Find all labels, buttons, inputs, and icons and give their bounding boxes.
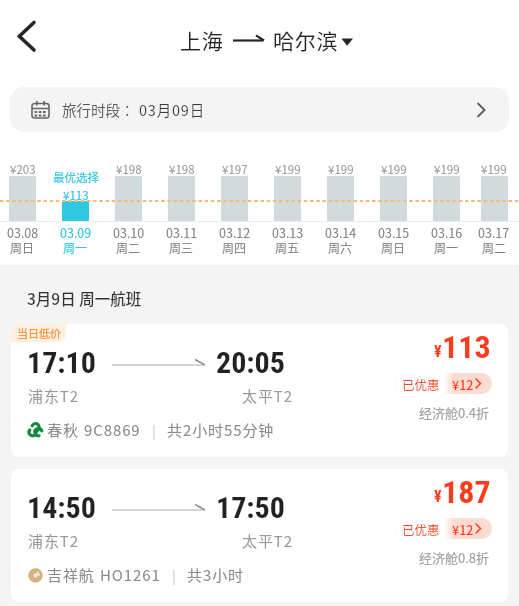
staticText: 周二 [482, 239, 507, 256]
button[interactable]: ¥197 [208, 145, 261, 255]
staticText: 最优选择 [53, 169, 99, 186]
staticText: 20:05 [216, 345, 285, 380]
staticText: 113 [442, 328, 491, 366]
button[interactable]: 已优惠 [395, 518, 492, 539]
button[interactable]: ¥198 [102, 145, 155, 255]
staticText: 周日 [381, 239, 406, 256]
staticText: 17:50 [216, 490, 285, 525]
button[interactable]: ¥199 [473, 145, 515, 255]
staticText: 当日低价 [17, 325, 61, 341]
staticText: ¥199 [328, 161, 354, 178]
staticText: | [172, 565, 176, 585]
staticText: 上海 [180, 25, 224, 55]
staticText: ¥197 [222, 161, 248, 178]
staticText: ¥198 [116, 161, 142, 178]
button[interactable]: 最优选择 [49, 145, 102, 255]
staticText: 03月09日 [139, 99, 205, 120]
button[interactable]: 已优惠 [395, 373, 492, 394]
staticText: 太平T2 [242, 530, 293, 552]
staticText: 哈尔滨 [273, 25, 339, 55]
staticText: 已优惠 [402, 375, 440, 393]
staticText: 187 [442, 473, 491, 511]
staticText: 03.09 [60, 223, 92, 241]
button[interactable]: 旅行时段： [10, 87, 509, 132]
staticText: 03.11 [166, 223, 198, 241]
staticText: 太平T2 [242, 385, 293, 407]
button[interactable]: Back [3, 15, 51, 63]
staticText: 春秋 [47, 419, 79, 441]
staticText: ¥199 [434, 161, 460, 178]
staticText: 共2小时55分钟 [167, 419, 275, 441]
staticText: | [152, 420, 156, 440]
button[interactable]: ¥203 [0, 145, 49, 255]
staticText: ¥ [434, 342, 442, 361]
button[interactable]: ¥199 [420, 145, 473, 255]
staticText: ¥199 [481, 161, 507, 178]
button[interactable]: ¥199 [314, 145, 367, 255]
staticText: ¥12 [452, 375, 474, 393]
staticText: 周一 [434, 239, 459, 256]
staticText: 周五 [275, 239, 300, 256]
staticText: ¥203 [10, 161, 36, 178]
staticText: ¥199 [275, 161, 301, 178]
staticText: 周三 [169, 239, 194, 256]
staticText: ¥198 [169, 161, 195, 178]
staticText: 17:10 [27, 345, 96, 380]
button[interactable]: ¥199 [261, 145, 314, 255]
staticText: 周四 [222, 239, 247, 256]
staticText: 9C8869 [84, 419, 141, 441]
staticText: 03.12 [219, 223, 251, 241]
button[interactable]: 14:50 [11, 469, 508, 602]
staticText: ¥113 [63, 187, 89, 204]
staticText: 03.17 [478, 223, 510, 241]
staticText: 周日 [10, 239, 35, 256]
staticText: 14:50 [27, 490, 96, 525]
staticText: 03.08 [7, 223, 39, 241]
staticText: ¥12 [452, 520, 474, 538]
staticText: 周六 [328, 239, 353, 256]
staticText: 已优惠 [402, 520, 440, 538]
staticText: 3月9日 周一航班 [27, 287, 142, 309]
staticText: 03.10 [113, 223, 145, 241]
button[interactable]: ¥199 [367, 145, 420, 255]
staticText: 03.16 [431, 223, 463, 241]
staticText: HO1261 [100, 564, 161, 586]
staticText: 旅行时段： [62, 99, 135, 120]
button[interactable]: 当日低价 [11, 324, 508, 457]
staticText: 经济舱0.4折 [419, 403, 490, 422]
button[interactable]: ¥198 [155, 145, 208, 255]
staticText: 浦东T2 [28, 385, 79, 407]
staticText: ¥199 [381, 161, 407, 178]
staticText: 周二 [116, 239, 141, 256]
staticText: 共3小时 [187, 564, 244, 586]
staticText: ¥ [434, 487, 442, 506]
staticText: 吉祥航 [47, 564, 95, 586]
staticText: 经济舱0.8折 [419, 548, 490, 567]
staticText: 03.15 [378, 223, 410, 241]
staticText: 浦东T2 [28, 530, 79, 552]
staticText: 03.14 [325, 223, 357, 241]
button[interactable]: Change dates [471, 99, 493, 121]
staticText: 03.13 [272, 223, 304, 241]
staticText: 周一 [63, 239, 88, 256]
button[interactable]: 上海 [180, 25, 339, 55]
